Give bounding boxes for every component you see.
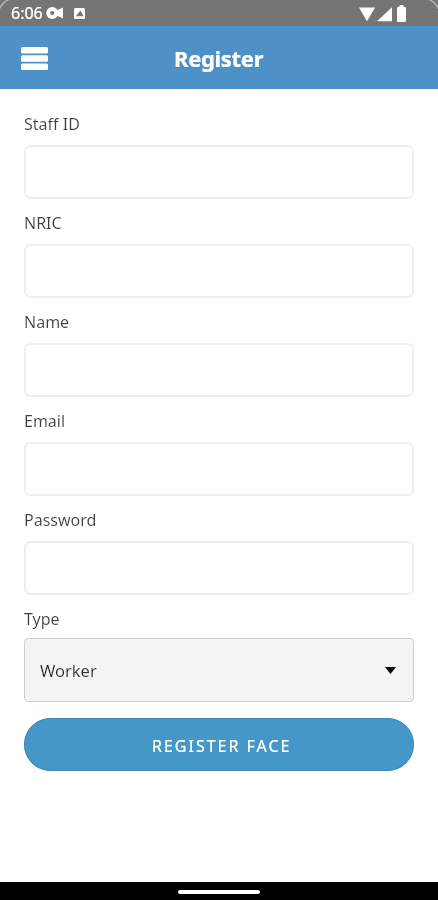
button[interactable]: Name input field <box>24 343 414 397</box>
button[interactable]: REGISTER FACE <box>24 718 414 771</box>
button[interactable]: NRIC input field <box>24 244 414 298</box>
button[interactable]: Email input field <box>24 442 414 496</box>
button[interactable]: Worker <box>24 638 414 702</box>
button[interactable]: Open navigation menu <box>10 34 58 82</box>
staticText: 6:06 <box>11 2 43 24</box>
staticText: NRIC <box>24 212 62 234</box>
staticText: Type <box>24 608 60 630</box>
staticText: Register <box>174 43 264 73</box>
staticText: REGISTER FACE <box>152 735 292 757</box>
staticText: Staff ID <box>24 113 80 135</box>
staticText: Password <box>24 509 97 531</box>
staticText: Name <box>24 311 70 333</box>
staticText: Worker <box>40 659 97 681</box>
button[interactable]: Staff ID input field <box>24 145 414 199</box>
button[interactable]: Password input field <box>24 541 414 595</box>
staticText: Email <box>24 410 66 432</box>
